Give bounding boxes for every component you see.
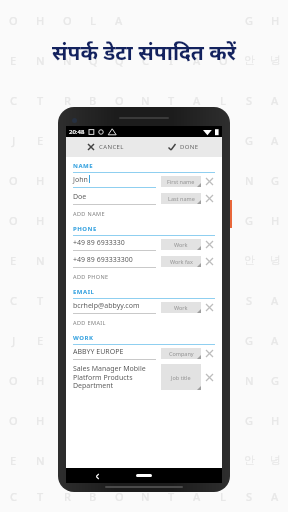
- staticText: E: [10, 253, 17, 268]
- staticText: A: [193, 53, 201, 68]
- staticText: ADD PHONE: [73, 273, 109, 280]
- staticText: G: [245, 333, 253, 348]
- staticText: G: [245, 413, 253, 428]
- button[interactable]: +49 89 693333300: [73, 253, 215, 270]
- staticText: U: [167, 133, 176, 148]
- staticText: K: [220, 133, 227, 148]
- staticText: G: [245, 133, 253, 148]
- staticText: O: [63, 13, 72, 28]
- staticText: T: [168, 489, 175, 504]
- staticText: O: [9, 373, 18, 388]
- button[interactable]: CANCEL: [66, 137, 144, 157]
- button[interactable]: Work: [161, 239, 201, 250]
- staticText: N: [141, 93, 150, 108]
- button[interactable]: ADD NAME: [73, 207, 215, 220]
- button[interactable]: Remove Company: [204, 348, 215, 359]
- button[interactable]: Remove Work fax: [204, 256, 215, 267]
- button[interactable]: Job title: [161, 364, 201, 390]
- button[interactable]: ABBYY EUROPE: [73, 345, 215, 362]
- button[interactable]: Work: [161, 302, 201, 313]
- staticText: L: [90, 173, 96, 188]
- staticText: O: [219, 173, 228, 188]
- staticText: NAME: [73, 162, 94, 170]
- staticText: S: [246, 489, 253, 504]
- button[interactable]: Remove First name: [204, 176, 215, 187]
- staticText: G: [245, 213, 253, 228]
- staticText: 안: [244, 453, 255, 467]
- button[interactable]: Home: [136, 474, 152, 477]
- staticText: EMAIL: [73, 288, 95, 296]
- staticText: +49 89 6933330: [73, 238, 125, 248]
- staticText: I: [169, 253, 173, 268]
- staticText: A: [63, 133, 71, 148]
- staticText: John: [73, 175, 88, 185]
- button[interactable]: ADD EMAIL: [73, 316, 215, 329]
- staticText: Doe: [73, 192, 87, 202]
- button[interactable]: Company: [161, 348, 201, 359]
- button[interactable]: Back: [92, 471, 102, 481]
- button[interactable]: ADD PHONE: [73, 270, 215, 283]
- button[interactable]: Remove Job title: [204, 372, 215, 383]
- staticText: Q: [115, 253, 124, 268]
- staticText: N: [36, 53, 45, 68]
- staticText: P: [142, 333, 149, 348]
- staticText: O: [219, 453, 228, 468]
- button[interactable]: Work fax: [161, 256, 201, 267]
- staticText: 녕: [270, 253, 281, 267]
- staticText: 녕: [270, 53, 281, 67]
- staticText: B: [193, 173, 201, 188]
- staticText: N: [245, 373, 254, 388]
- staticText: O: [9, 213, 18, 228]
- staticText: I: [195, 133, 199, 148]
- staticText: 20:48: [69, 128, 85, 136]
- staticText: R: [64, 293, 71, 308]
- staticText: O: [219, 373, 228, 388]
- staticText: 안: [244, 253, 255, 267]
- staticText: Work: [174, 304, 188, 311]
- staticText: H: [36, 213, 45, 228]
- staticText: C: [10, 489, 17, 504]
- staticText: E: [37, 333, 44, 348]
- staticText: 好: [166, 173, 177, 187]
- staticText: G: [245, 13, 253, 28]
- staticText: E: [10, 53, 17, 68]
- staticText: L: [220, 293, 226, 308]
- staticText: A: [115, 373, 123, 388]
- button[interactable]: Remove Last name: [204, 193, 215, 204]
- button[interactable]: Remove Work: [204, 239, 215, 250]
- staticText: N: [36, 253, 45, 268]
- staticText: A: [271, 133, 279, 148]
- staticText: N: [141, 293, 150, 308]
- staticText: C: [142, 53, 149, 68]
- staticText: L: [90, 373, 96, 388]
- staticText: ADD NAME: [73, 210, 105, 217]
- button[interactable]: Sales Manager Mobile Platform Products D…: [73, 362, 215, 392]
- button[interactable]: +49 89 6933330: [73, 236, 215, 253]
- button[interactable]: Doe: [73, 190, 215, 207]
- staticText: L: [90, 213, 96, 228]
- staticText: WORK: [73, 334, 94, 342]
- button[interactable]: John: [73, 173, 215, 190]
- staticText: PHONE: [73, 225, 97, 233]
- button[interactable]: Last name: [161, 193, 201, 204]
- staticText: B: [89, 489, 97, 504]
- staticText: Q: [89, 53, 98, 68]
- staticText: ABBYY EUROPE: [73, 347, 124, 357]
- staticText: H: [271, 13, 280, 28]
- staticText: 好: [166, 373, 177, 387]
- button[interactable]: bcrhelp@abbyy.com: [73, 299, 215, 316]
- staticText: Job title: [171, 374, 191, 381]
- staticText: G: [271, 373, 279, 388]
- staticText: Q: [115, 333, 124, 348]
- button[interactable]: Remove Work: [204, 302, 215, 313]
- staticText: C: [142, 253, 149, 268]
- staticText: A: [193, 253, 201, 268]
- button[interactable]: DONE: [144, 137, 222, 157]
- button[interactable]: First name: [161, 176, 201, 187]
- staticText: T: [37, 489, 44, 504]
- staticText: Work: [174, 241, 188, 248]
